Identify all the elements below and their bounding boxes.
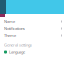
staticText: Theme <box>4 33 16 38</box>
button[interactable]: Language <box>0 49 64 55</box>
button[interactable]: Name <box>0 18 64 25</box>
button[interactable]: Theme <box>0 32 64 39</box>
staticText: Name <box>4 19 15 24</box>
button[interactable]: Notifications <box>0 25 64 32</box>
staticText: Notifications <box>4 26 25 31</box>
staticText: Language <box>9 49 25 55</box>
staticText: General settings <box>4 42 32 48</box>
